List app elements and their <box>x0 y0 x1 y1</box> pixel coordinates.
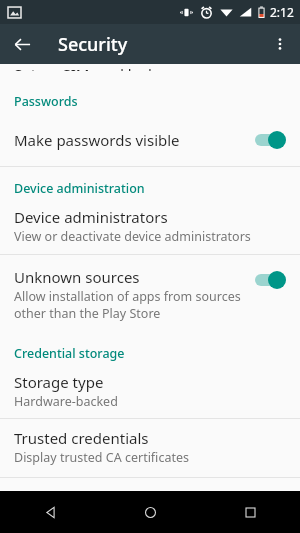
staticText: Credential storage <box>14 345 125 362</box>
staticText: Display trusted CA certificates <box>14 449 189 466</box>
staticText: Security <box>58 32 128 57</box>
staticText: Unknown sources <box>14 267 140 287</box>
staticText: Make passwords visible <box>14 130 254 150</box>
button[interactable]: Unknown sources <box>0 255 300 331</box>
button[interactable]: Navigate up <box>4 26 40 62</box>
button[interactable]: Device administrators <box>0 207 300 245</box>
staticText: View or deactivate device administrators <box>14 228 251 245</box>
staticText: Allow installation of apps from sources … <box>14 288 244 321</box>
button[interactable]: More options <box>262 26 298 62</box>
button[interactable]: Home <box>100 491 200 533</box>
button[interactable]: Set up SIM card lock <box>0 64 300 71</box>
staticText: Passwords <box>14 93 78 110</box>
button[interactable]: Storage type <box>0 372 300 410</box>
staticText: Set up SIM card lock <box>14 64 157 71</box>
staticText: Device administrators <box>14 207 168 227</box>
staticText: 2:12 <box>270 4 294 20</box>
staticText: Device administration <box>14 180 145 197</box>
button[interactable]: Trusted credentials <box>0 428 300 466</box>
staticText: Trusted credentials <box>14 428 149 448</box>
staticText: Hardware-backed <box>14 393 118 410</box>
button[interactable]: Make passwords visible <box>0 120 300 160</box>
button[interactable]: Back <box>0 491 100 533</box>
button[interactable]: Recent apps <box>200 491 300 533</box>
staticText: Storage type <box>14 372 104 392</box>
